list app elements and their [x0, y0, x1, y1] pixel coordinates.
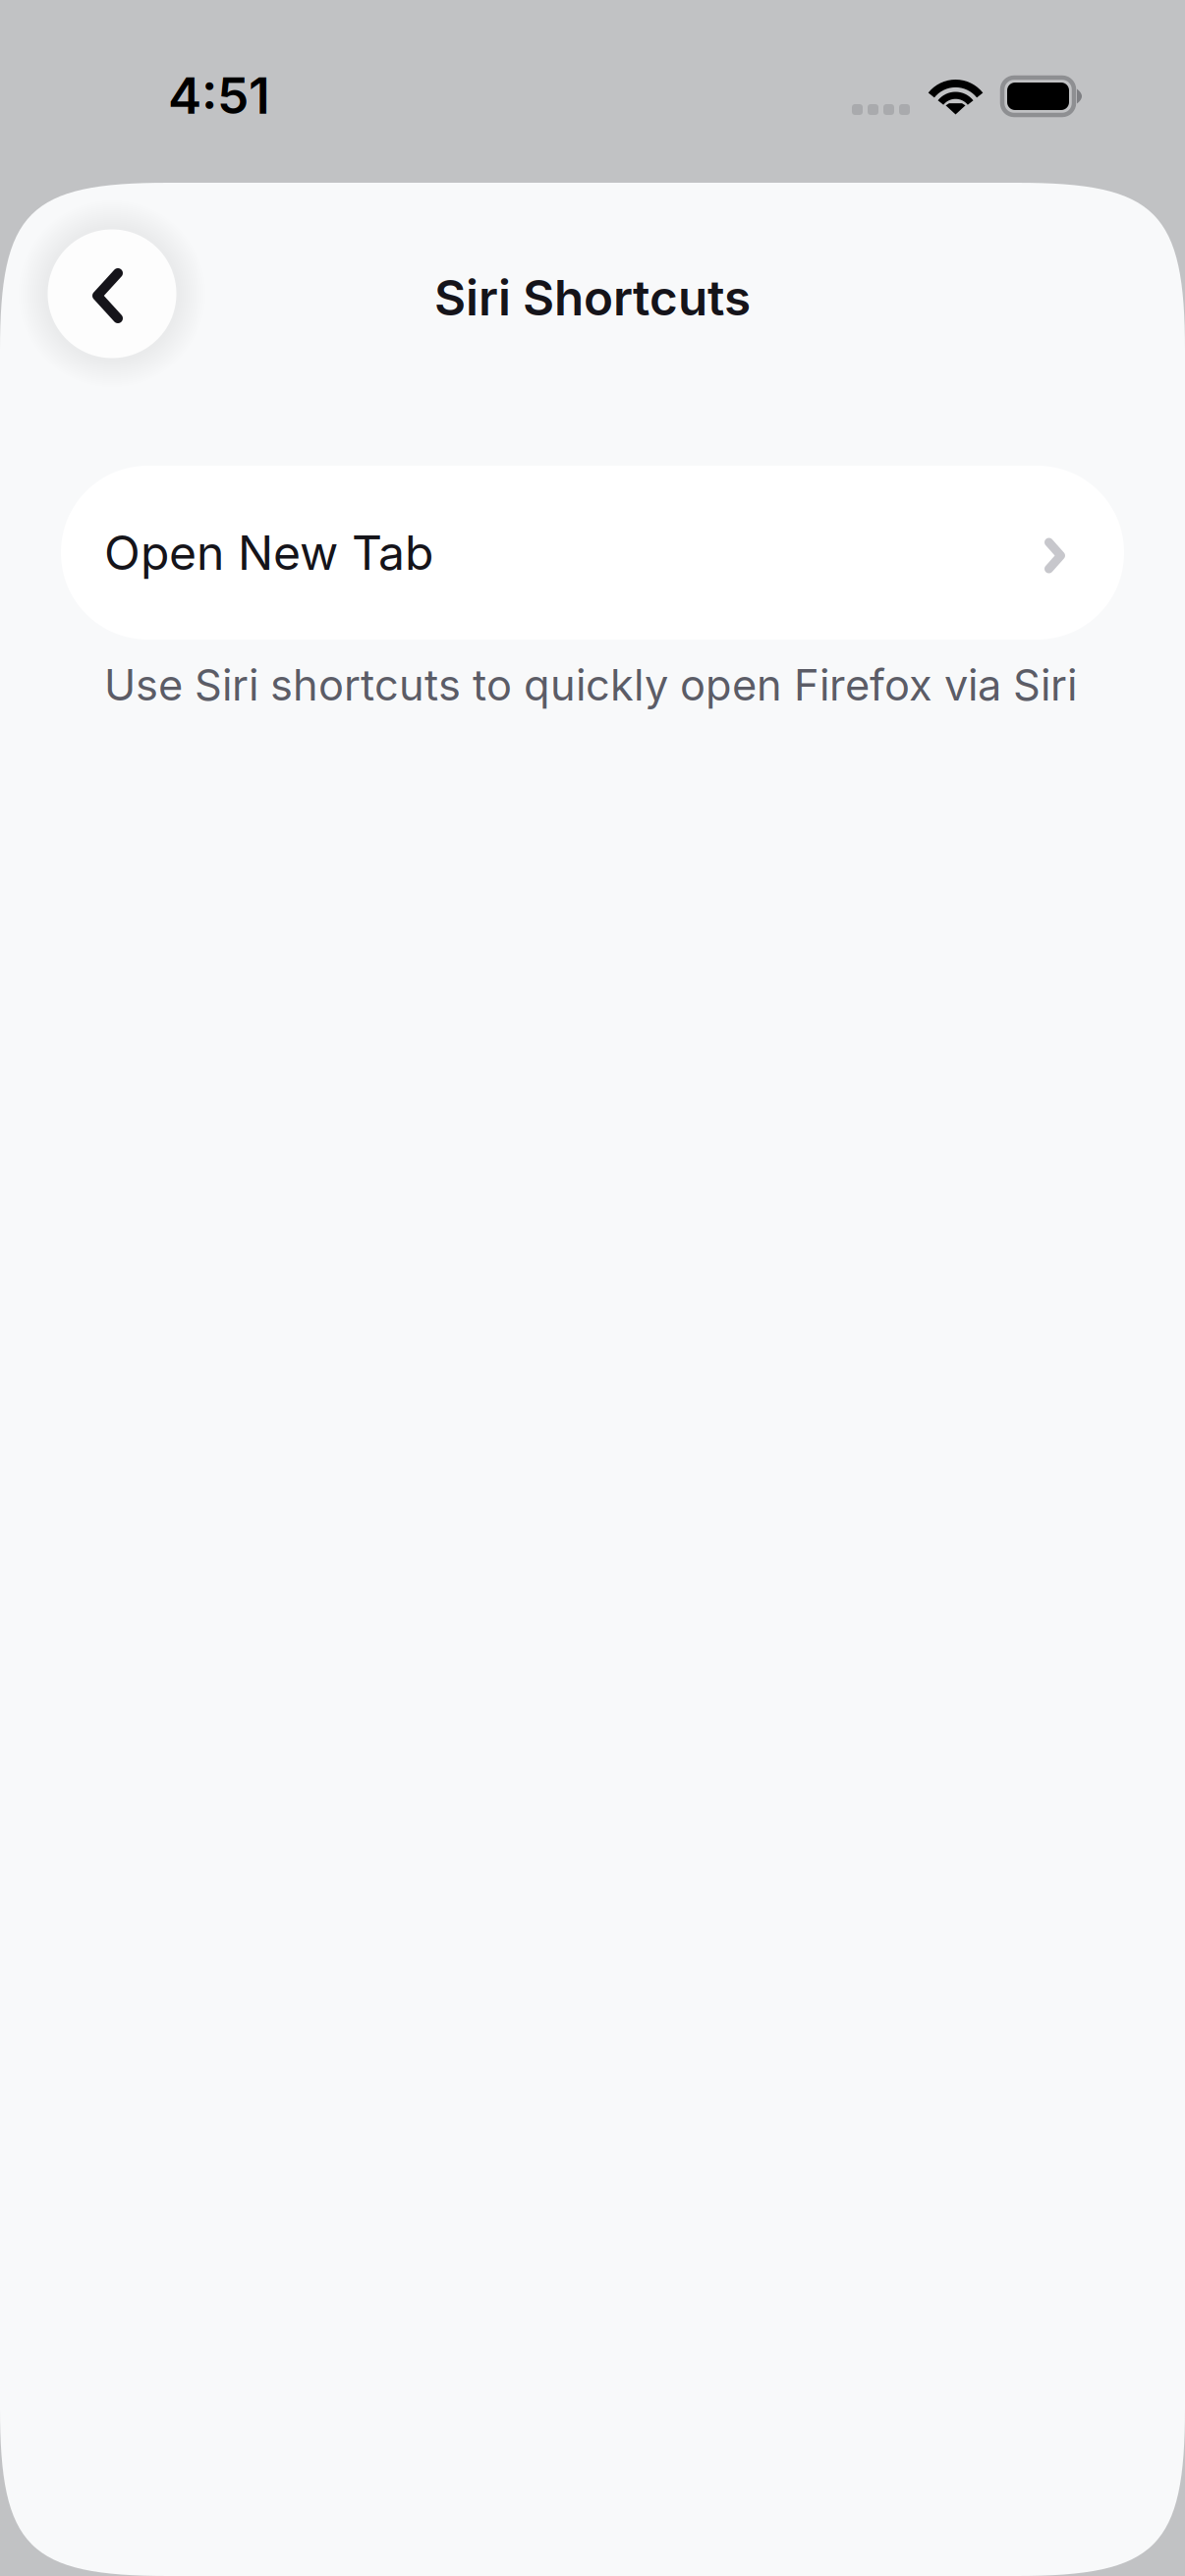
- staticText: Open New Tab: [104, 524, 433, 581]
- staticText: 4:51: [168, 65, 270, 126]
- staticText: Siri Shortcuts: [434, 268, 751, 327]
- staticText: Use Siri shortcuts to quickly open Firef…: [104, 659, 1077, 711]
- button[interactable]: Back: [16, 197, 208, 390]
- button[interactable]: Open New Tab: [61, 466, 1124, 640]
